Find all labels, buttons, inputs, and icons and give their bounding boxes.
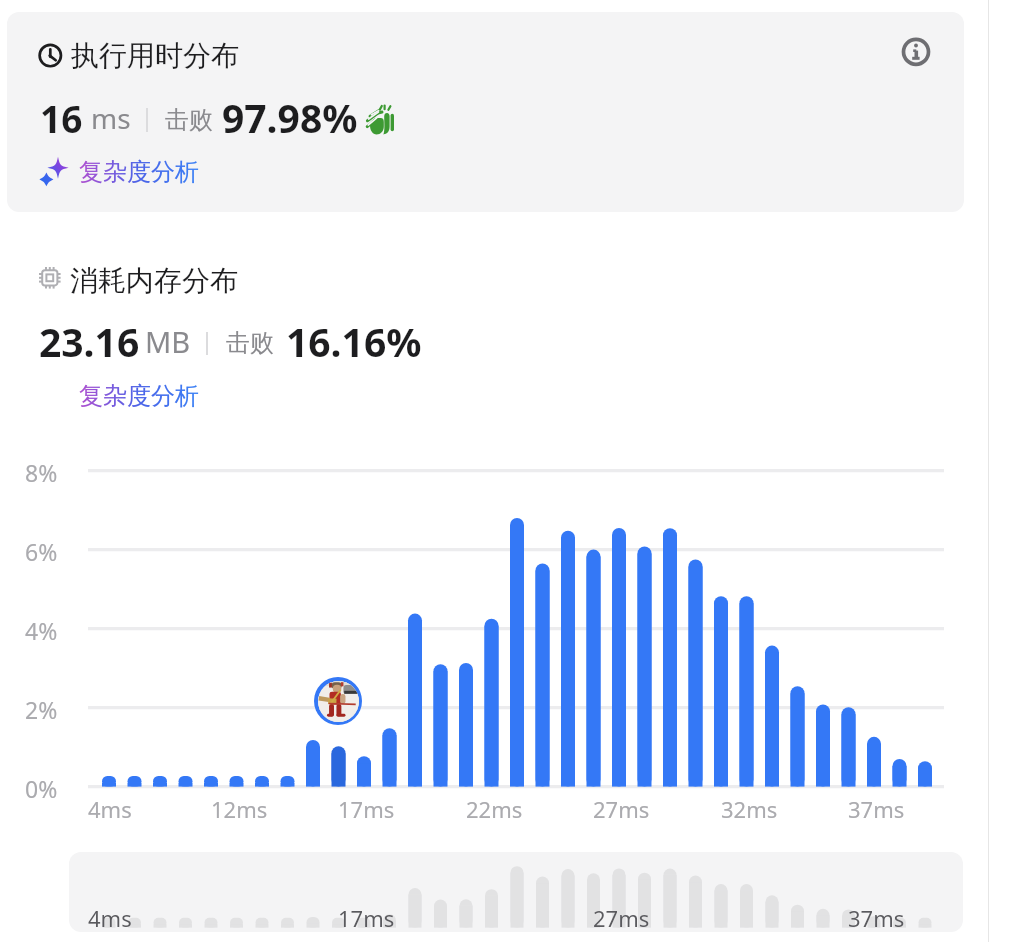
staticText: 复杂度分析 — [79, 157, 199, 187]
staticText: 22ms — [466, 794, 523, 824]
staticText: 27ms — [593, 794, 650, 824]
staticText: 消耗内存分布 — [70, 263, 238, 298]
staticText: 复杂度分析 — [79, 381, 199, 411]
staticText: 4ms — [88, 903, 132, 933]
staticText: 击败 — [226, 328, 274, 358]
staticText: 97.98% — [222, 91, 358, 144]
staticText: 4% — [25, 615, 58, 646]
staticText: 23.16 — [39, 315, 140, 368]
button[interactable]: 复杂度分析 — [34, 152, 206, 190]
staticText: 16 — [40, 93, 83, 143]
button[interactable]: Range selector — [69, 852, 963, 932]
button[interactable]: Your submission — [314, 677, 362, 725]
button[interactable]: Info — [894, 30, 938, 74]
staticText: 执行用时分布 — [71, 38, 239, 73]
staticText: 17ms — [338, 903, 395, 933]
staticText: ms — [91, 99, 131, 137]
staticText: 32ms — [721, 794, 778, 824]
staticText: 37ms — [848, 794, 905, 824]
staticText: 12ms — [211, 794, 268, 824]
staticText: 0% — [25, 773, 58, 804]
staticText: 8% — [25, 457, 58, 488]
staticText: 17ms — [338, 794, 395, 824]
staticText: 16.16% — [286, 315, 422, 368]
staticText: 4ms — [88, 794, 132, 824]
staticText: 6% — [25, 536, 58, 567]
staticText: 击败 — [165, 105, 213, 135]
staticText: 27ms — [593, 903, 650, 933]
staticText: 37ms — [848, 903, 905, 933]
button[interactable]: 复杂度分析 — [76, 378, 204, 412]
staticText: 2% — [25, 694, 58, 725]
staticText: MB — [145, 322, 191, 361]
